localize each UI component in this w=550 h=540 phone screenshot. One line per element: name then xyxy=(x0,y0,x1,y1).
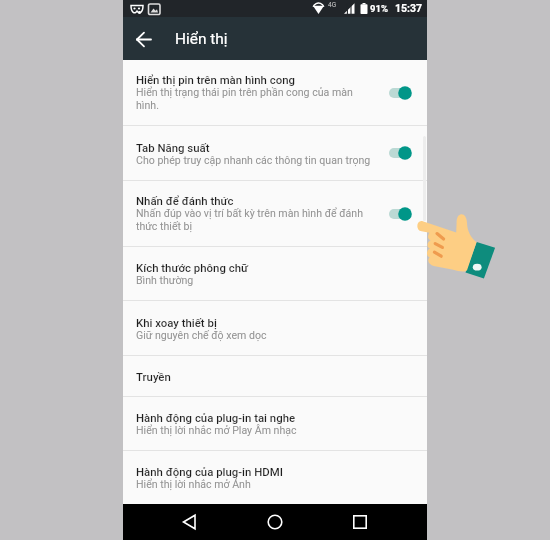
button[interactable]: Truyền xyxy=(123,356,427,396)
button[interactable]: Kích thước phông chữ xyxy=(123,247,427,300)
staticText: Hành động của plug-in tai nghe xyxy=(136,411,296,424)
button[interactable]: Toggle xyxy=(386,141,422,165)
button[interactable]: Khi xoay thiết bị xyxy=(123,301,427,355)
button[interactable]: Back xyxy=(128,25,156,53)
staticText: 15:37 xyxy=(395,2,423,14)
staticText: Nhấn để đánh thức xyxy=(136,194,234,207)
button[interactable]: Hiển thị pin trên màn hình cong xyxy=(123,60,427,125)
button[interactable]: Tab Năng suất xyxy=(123,126,427,180)
button[interactable]: Toggle xyxy=(386,81,422,105)
staticText: 4G xyxy=(328,1,337,9)
staticText: Hiển thị pin trên màn hình cong xyxy=(136,73,295,86)
staticText: Hiển thị xyxy=(175,30,228,48)
button[interactable]: Hành động của plug-in tai nghe xyxy=(123,397,427,450)
button[interactable]: Hành động của plug-in HDMI xyxy=(123,451,427,504)
staticText: Hiển thị lời nhắc mở Play Âm nhạc xyxy=(136,424,297,436)
staticText: Khi xoay thiết bị xyxy=(136,316,217,329)
staticText: Bình thường xyxy=(136,274,194,286)
button[interactable]: Home xyxy=(257,504,293,540)
staticText: Hiển thị trạng thái pin trên phần cong c… xyxy=(136,86,373,112)
staticText: Cho phép truy cập nhanh các thông tin qu… xyxy=(136,154,371,166)
staticText: Truyền xyxy=(136,370,171,383)
button[interactable]: Recents xyxy=(342,504,378,540)
staticText: Hành động của plug-in HDMI xyxy=(136,465,283,478)
staticText: Kích thước phông chữ xyxy=(136,261,249,274)
staticText: Giữ nguyên chế độ xem dọc xyxy=(136,329,267,341)
button[interactable]: Toggle xyxy=(386,202,422,226)
staticText: Hiển thị lời nhắc mở Ảnh xyxy=(136,478,251,490)
button[interactable]: Back xyxy=(172,504,208,540)
staticText: Tab Năng suất xyxy=(136,141,210,154)
staticText: 91% xyxy=(370,3,388,14)
button[interactable]: Nhấn để đánh thức xyxy=(123,181,427,246)
staticText: Nhấn đúp vào vị trí bất kỳ trên màn hình… xyxy=(136,207,373,233)
